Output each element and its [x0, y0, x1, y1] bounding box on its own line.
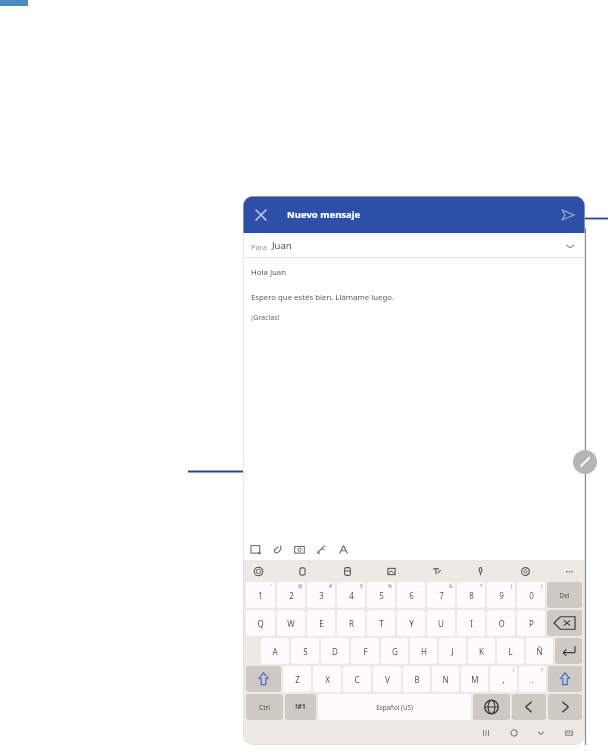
- button[interactable]: W: [277, 610, 305, 636]
- button[interactable]: Idioma: [473, 694, 510, 720]
- button[interactable]: 3: [307, 582, 335, 608]
- staticText: N: [442, 674, 449, 685]
- button[interactable]: 8: [457, 582, 485, 608]
- button[interactable]: Ctrl: [246, 694, 283, 720]
- button[interactable]: V: [373, 666, 401, 692]
- button[interactable]: N: [432, 666, 459, 692]
- button[interactable]: D: [321, 638, 349, 664]
- button[interactable]: B: [403, 666, 430, 692]
- staticText: (: [511, 583, 513, 590]
- staticText: Ctrl: [259, 703, 270, 712]
- button[interactable]: G: [381, 638, 408, 664]
- button[interactable]: Intro: [555, 638, 582, 664]
- button[interactable]: 4: [337, 582, 365, 608]
- button[interactable]: Texto: [336, 542, 351, 557]
- button[interactable]: Anterior: [512, 694, 546, 720]
- staticText: Q: [257, 618, 264, 629]
- staticText: C: [354, 674, 360, 685]
- button[interactable]: C: [343, 666, 371, 692]
- staticText: F: [363, 646, 368, 657]
- button[interactable]: E: [307, 610, 335, 636]
- staticText: $: [360, 583, 363, 590]
- button[interactable]: 1: [246, 582, 275, 608]
- button[interactable]: Del: [547, 582, 582, 608]
- button[interactable]: Herramienta 6: [519, 565, 532, 578]
- staticText: 1: [258, 590, 263, 601]
- button[interactable]: Dibujar: [314, 542, 329, 557]
- staticText: K: [479, 646, 484, 657]
- button[interactable]: Herramienta 3: [385, 565, 398, 578]
- staticText: O: [498, 618, 505, 629]
- button[interactable]: A: [261, 638, 289, 664]
- button[interactable]: 7: [427, 582, 455, 608]
- staticText: ): [541, 583, 543, 590]
- button[interactable]: Teclado: [561, 725, 577, 741]
- button[interactable]: Herramienta 2: [341, 565, 354, 578]
- button[interactable]: 2: [277, 582, 305, 608]
- staticText: Z: [295, 674, 300, 685]
- staticText: ?: [541, 667, 544, 674]
- button[interactable]: Recientes: [478, 725, 494, 741]
- button[interactable]: 0: [517, 582, 545, 608]
- staticText: X: [325, 674, 330, 685]
- button[interactable]: L: [497, 638, 524, 664]
- button[interactable]: Ocultar teclado: [533, 725, 549, 741]
- staticText: Para: [251, 242, 267, 252]
- button[interactable]: .: [519, 666, 546, 692]
- button[interactable]: Cerrar: [250, 204, 272, 226]
- button[interactable]: Herramienta 0: [252, 565, 265, 578]
- staticText: U: [438, 618, 444, 629]
- button[interactable]: Inicio: [506, 725, 522, 741]
- button[interactable]: 5: [367, 582, 395, 608]
- button[interactable]: !#1: [285, 694, 316, 720]
- button[interactable]: I: [457, 610, 485, 636]
- button[interactable]: Insertar: [248, 542, 263, 557]
- button[interactable]: Herramienta 5: [474, 565, 487, 578]
- staticText: G: [392, 646, 398, 657]
- button[interactable]: Herramienta 4: [430, 565, 443, 578]
- button[interactable]: K: [468, 638, 495, 664]
- button[interactable]: Cámara: [292, 542, 307, 557]
- button[interactable]: J: [439, 638, 466, 664]
- button[interactable]: Z: [283, 666, 311, 692]
- button[interactable]: X: [313, 666, 341, 692]
- staticText: 0: [529, 590, 534, 601]
- staticText: ¡Gracias!: [251, 312, 280, 322]
- staticText: V: [385, 674, 390, 685]
- button[interactable]: H: [410, 638, 437, 664]
- staticText: 4: [349, 590, 354, 601]
- button[interactable]: 6: [397, 582, 425, 608]
- button[interactable]: Expandir destinatarios: [563, 239, 577, 253]
- button[interactable]: M: [461, 666, 488, 692]
- button[interactable]: Editar: [573, 450, 597, 474]
- staticText: !: [513, 667, 515, 674]
- button[interactable]: Español (US): [318, 694, 471, 720]
- staticText: Del: [559, 591, 570, 600]
- button[interactable]: Q: [246, 610, 275, 636]
- button[interactable]: ,: [490, 666, 517, 692]
- button[interactable]: 9: [487, 582, 515, 608]
- button[interactable]: Adjuntar: [270, 542, 285, 557]
- button[interactable]: Ñ: [526, 638, 553, 664]
- button[interactable]: Borrar: [547, 610, 582, 636]
- button[interactable]: Siguiente: [548, 694, 582, 720]
- staticText: ': [271, 583, 273, 590]
- button[interactable]: P: [517, 610, 545, 636]
- button[interactable]: Herramienta 1: [296, 565, 309, 578]
- button[interactable]: U: [427, 610, 455, 636]
- staticText: &: [449, 583, 453, 590]
- staticText: Espero que estés bien. Llámame luego.: [251, 292, 395, 303]
- staticText: ,: [502, 674, 505, 685]
- staticText: L: [508, 646, 513, 657]
- button[interactable]: O: [487, 610, 515, 636]
- button[interactable]: F: [351, 638, 379, 664]
- button[interactable]: Herramienta 7: [563, 565, 576, 578]
- button[interactable]: Mayúsculas: [246, 666, 281, 692]
- button[interactable]: Enviar: [558, 205, 578, 225]
- button[interactable]: Mayúsculas: [548, 666, 582, 692]
- button[interactable]: T: [367, 610, 395, 636]
- button[interactable]: Y: [397, 610, 425, 636]
- button[interactable]: R: [337, 610, 365, 636]
- staticText: Hola Juan: [251, 267, 287, 278]
- button[interactable]: S: [291, 638, 319, 664]
